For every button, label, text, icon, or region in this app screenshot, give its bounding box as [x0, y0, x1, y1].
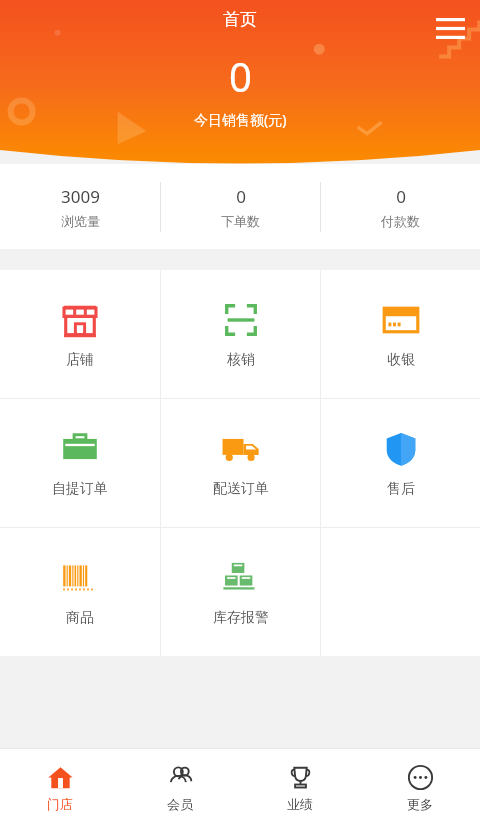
button[interactable]: 0 [321, 164, 480, 249]
button[interactable]: 更多 [360, 749, 480, 827]
button[interactable]: 配送订单 [161, 399, 320, 527]
staticText: 门店 [47, 796, 73, 812]
staticText: 0 [236, 185, 246, 208]
staticText: 自提订单 [52, 480, 108, 498]
button[interactable]: 0 [161, 164, 320, 249]
staticText: 库存报警 [213, 609, 269, 627]
staticText: 业绩 [287, 796, 313, 812]
button[interactable]: 门店 [0, 749, 120, 827]
staticText: 今日销售额(元) [194, 110, 287, 129]
staticText: 0 [229, 49, 252, 103]
button[interactable]: 售后 [321, 399, 480, 527]
staticText: 付款数 [381, 213, 420, 229]
button[interactable]: 库存报警 [161, 528, 320, 656]
staticText: 更多 [407, 796, 433, 812]
staticText: 核销 [227, 351, 255, 369]
staticText: 会员 [167, 796, 193, 812]
staticText: 浏览量 [61, 213, 100, 229]
button[interactable]: Menu [428, 6, 472, 50]
button[interactable]: 核销 [161, 270, 320, 398]
button[interactable]: 3009 [0, 164, 160, 249]
button[interactable]: 业绩 [240, 749, 360, 827]
staticText: 商品 [66, 609, 94, 627]
button[interactable]: 商品 [0, 528, 160, 656]
button[interactable]: 会员 [120, 749, 240, 827]
staticText: 店铺 [66, 351, 94, 369]
staticText: 3009 [61, 185, 100, 208]
staticText: 收银 [387, 351, 415, 369]
staticText: 下单数 [221, 213, 260, 229]
staticText: 0 [396, 185, 406, 208]
button[interactable]: 收银 [321, 270, 480, 398]
staticText: 售后 [387, 480, 415, 498]
staticText: 配送订单 [213, 480, 269, 498]
button[interactable]: 自提订单 [0, 399, 160, 527]
button[interactable]: 店铺 [0, 270, 160, 398]
staticText: 首页 [223, 9, 257, 30]
